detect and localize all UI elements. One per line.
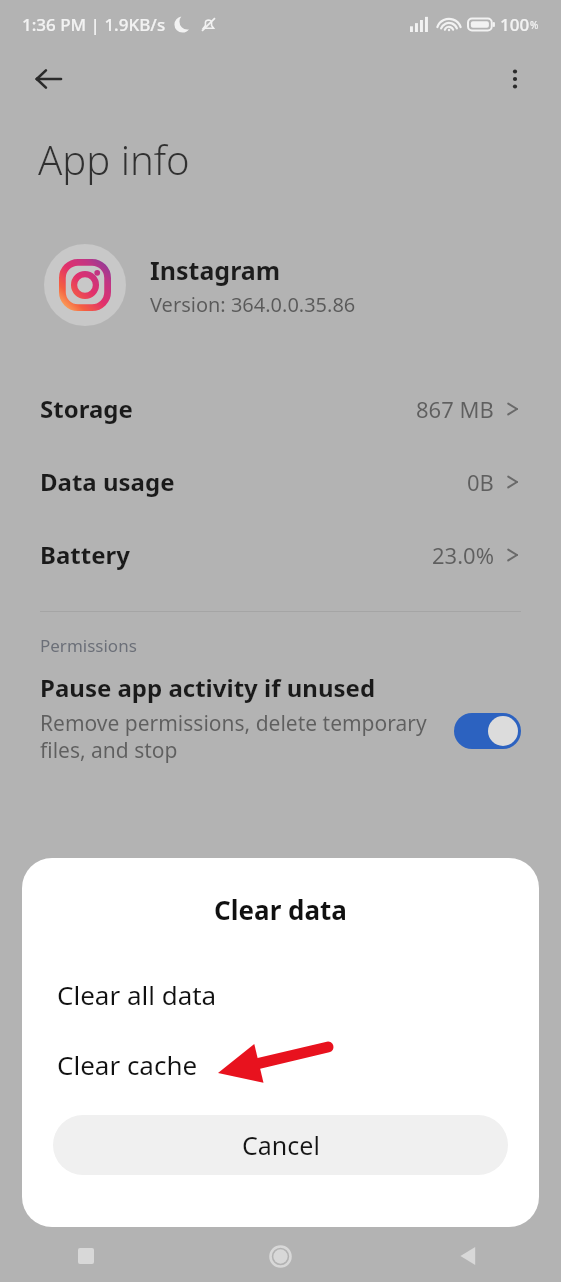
staticText: Clear all data: [57, 977, 217, 1012]
staticText: Clear cache: [57, 1047, 198, 1082]
staticText: 100: [500, 13, 530, 36]
staticText: Version: 364.0.0.35.86: [150, 291, 356, 318]
button[interactable]: Data usage: [0, 445, 561, 518]
button[interactable]: Home: [187, 1230, 374, 1282]
button[interactable]: Clear cache: [22, 1029, 539, 1099]
staticText: Permissions: [40, 634, 137, 657]
button[interactable]: Cancel: [53, 1115, 508, 1175]
staticText: 1:36 PM | 1.9KB/s: [22, 13, 166, 36]
button[interactable]: Clear all data: [22, 959, 539, 1029]
staticText: Data usage: [40, 465, 175, 498]
button[interactable]: Recents: [0, 1230, 187, 1282]
button[interactable]: More options: [491, 55, 539, 103]
staticText: Pause app activity if unused: [40, 671, 376, 704]
staticText: 23.0%: [432, 540, 494, 570]
button[interactable]: Back: [24, 55, 72, 103]
staticText: Storage: [40, 392, 133, 425]
staticText: Clear data: [22, 892, 539, 927]
staticText: Remove permissions, delete temporary fil…: [40, 709, 434, 764]
staticText: Instagram: [150, 253, 281, 287]
button[interactable]: Battery: [0, 518, 561, 591]
staticText: Cancel: [242, 1128, 320, 1162]
button[interactable]: Pause app activity if unused: [0, 671, 561, 764]
staticText: Battery: [40, 538, 130, 571]
staticText: %: [530, 18, 539, 32]
button[interactable]: Back: [374, 1230, 561, 1282]
button[interactable]: Pause app activity toggle: [454, 713, 521, 749]
button[interactable]: Storage: [0, 372, 561, 445]
staticText: App info: [38, 132, 190, 186]
staticText: 867 MB: [416, 394, 494, 424]
staticText: 0B: [467, 467, 494, 497]
